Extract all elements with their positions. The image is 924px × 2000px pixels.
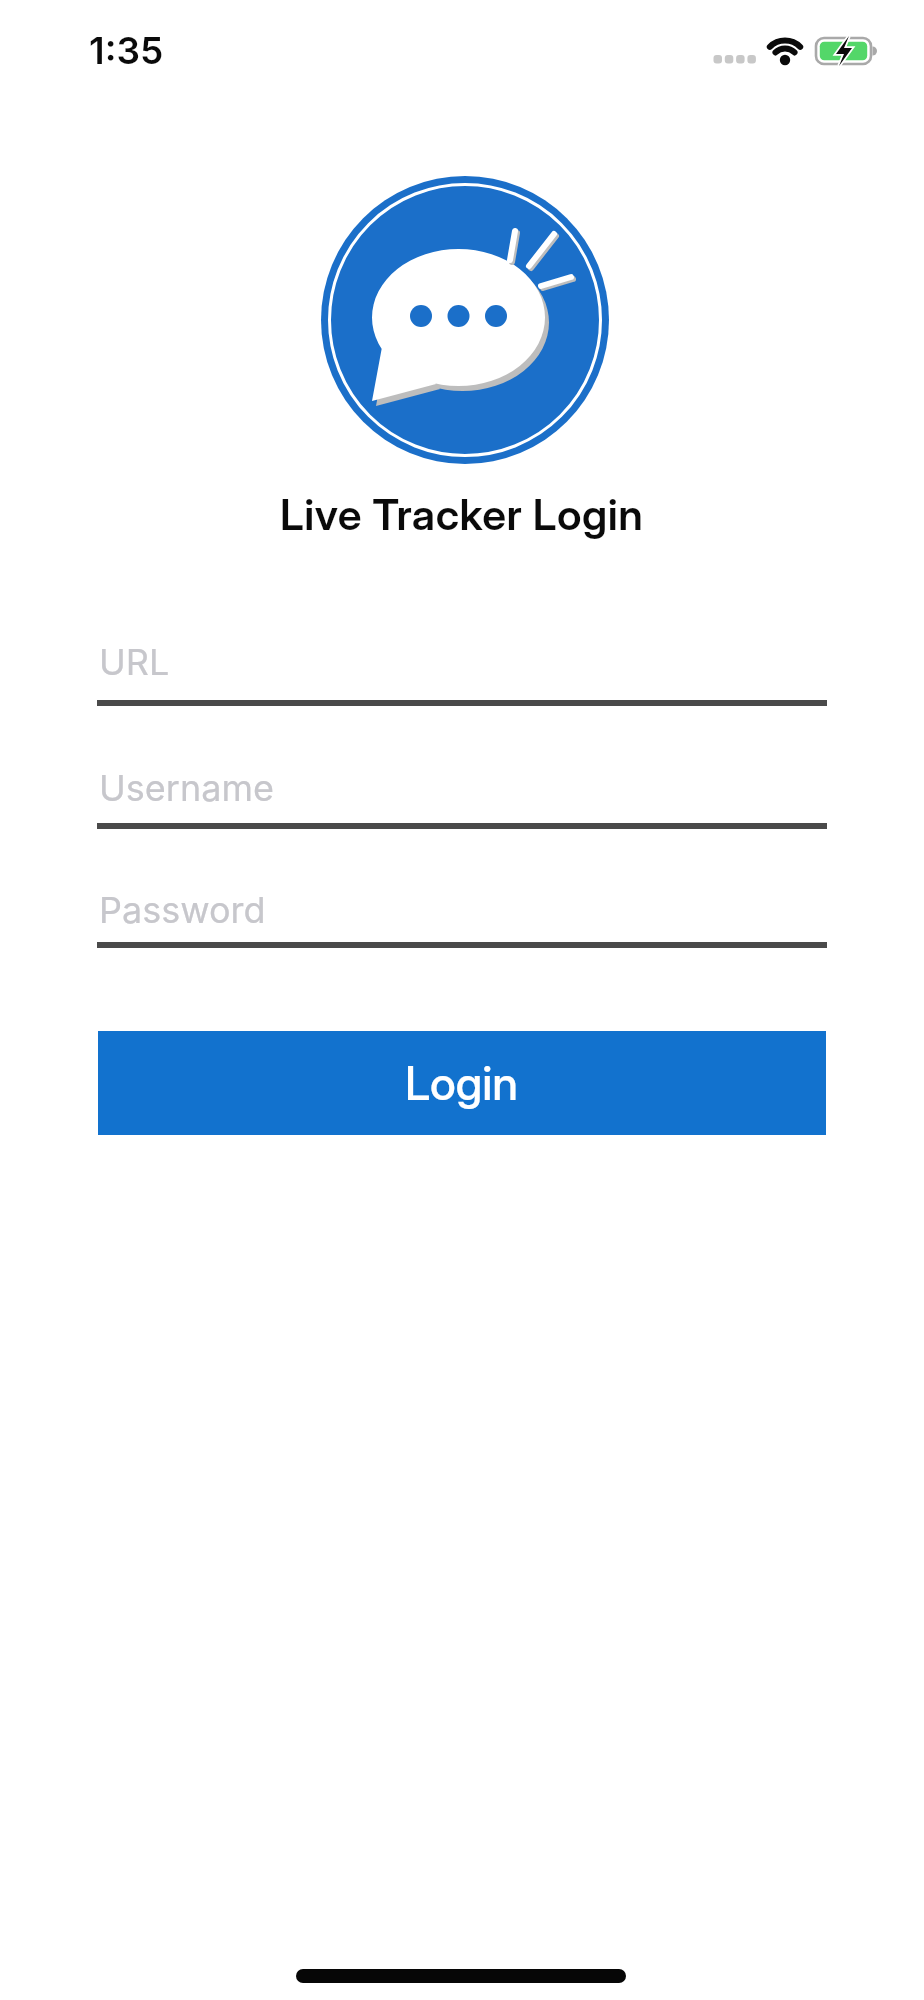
staticText: 1:35 [89, 28, 164, 73]
staticText: Password [99, 888, 266, 932]
staticText: Login [405, 1055, 519, 1111]
staticText: Live Tracker Login [280, 488, 644, 540]
staticText: URL [99, 640, 170, 684]
staticText: Username [99, 766, 274, 810]
